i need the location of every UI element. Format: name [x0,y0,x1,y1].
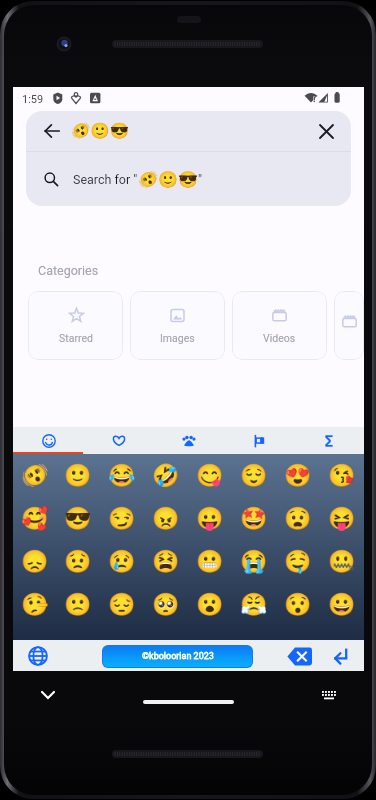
staticText: 😂 [108,463,136,489]
staticText: 🤐 [328,549,356,575]
button[interactable]: 🥰 [13,497,56,540]
staticText: 😘 [328,463,356,489]
button[interactable]: Back [41,120,63,142]
staticText: Search for " [73,172,138,187]
staticText: 1:59 [22,93,44,106]
button[interactable]: 😏 [100,497,144,540]
staticText: Categories [38,263,99,278]
staticText: Starred [59,332,93,344]
staticText: ©kboloorian 2023 [142,651,214,662]
button[interactable]: 😛 [188,497,232,540]
button[interactable]: Videos [232,291,327,360]
button[interactable]: 😫 [144,540,188,583]
button[interactable]: 😬 [188,540,232,583]
button[interactable]: Change language [26,644,50,668]
button[interactable]: 😯 [276,583,320,626]
button[interactable]: 😤 [232,583,276,626]
button[interactable]: 😝 [320,497,364,540]
button[interactable]: 😋 [188,454,232,497]
staticText: 😀 [328,592,356,618]
staticText: 😫 [152,549,180,575]
button[interactable]: 😠 [144,497,188,540]
button[interactable]: 🫨 [13,454,56,497]
staticText: 😟 [64,549,92,575]
button[interactable]: 😮 [188,583,232,626]
button[interactable]: 🙂 [56,454,100,497]
button[interactable]: 😂 [100,454,144,497]
button[interactable]: Category 1 [84,427,154,454]
staticText: 🫨🙂😎 [71,122,130,140]
button[interactable]: 😭 [232,540,276,583]
staticText: 😬 [196,549,224,575]
staticText: 🤩 [240,506,268,532]
staticText: 😢 [108,549,136,575]
staticText: 😤 [240,592,268,618]
button[interactable]: Images [130,291,225,360]
staticText: 😔 [108,592,136,618]
staticText: Images [160,332,195,344]
button[interactable]: 😞 [13,540,56,583]
staticText: 🙁 [64,592,92,618]
button[interactable]: Category 3 [224,427,294,454]
button[interactable]: Category 2 [154,427,224,454]
staticText: 😞 [21,549,49,575]
staticText: 😯 [284,592,312,618]
button[interactable]: Category 4 [294,427,364,454]
staticText: 😎 [64,506,92,532]
staticText: 😛 [196,506,224,532]
button[interactable]: Close [315,120,337,142]
staticText: 😠 [152,506,180,532]
staticText: 😭 [240,549,268,575]
button[interactable] [334,291,364,360]
staticText: 😏 [108,506,136,532]
button[interactable]: 🙁 [56,583,100,626]
button[interactable]: Search for " [26,152,351,206]
button[interactable]: 😔 [100,583,144,626]
staticText: 🤤 [284,549,312,575]
staticText: 😧 [284,506,312,532]
button[interactable]: 😘 [320,454,364,497]
button[interactable]: 😌 [232,454,276,497]
staticText: 🙂 [64,463,92,489]
staticText: 🤥 [21,592,49,618]
button[interactable]: 🤩 [232,497,276,540]
staticText: 😋 [196,463,224,489]
button[interactable]: 😍 [276,454,320,497]
button[interactable]: 🤤 [276,540,320,583]
button[interactable]: ©kboloorian 2023 [103,646,252,667]
staticText: 😮 [196,592,224,618]
button[interactable]: Starred [28,291,123,360]
button[interactable]: 😀 [320,583,364,626]
button[interactable]: 🤥 [13,583,56,626]
staticText: 🥰 [21,506,49,532]
button[interactable]: Hide keyboard [34,681,62,709]
staticText: " [198,172,203,187]
staticText: 🫨🙂😎 [138,170,198,189]
button[interactable]: 😎 [56,497,100,540]
button[interactable]: 🤐 [320,540,364,583]
staticText: Videos [263,332,296,344]
staticText: 😌 [240,463,268,489]
staticText: 🥺 [152,592,180,618]
button[interactable]: 🥺 [144,583,188,626]
button[interactable]: Backspace [287,647,312,666]
staticText: 😝 [328,506,356,532]
button[interactable]: 😟 [56,540,100,583]
staticText: 😍 [284,463,312,489]
button[interactable]: Enter [327,642,355,670]
button[interactable]: 🤣 [144,454,188,497]
button[interactable]: Switch keyboard [315,681,343,709]
button[interactable]: 😢 [100,540,144,583]
button[interactable]: 😧 [276,497,320,540]
button[interactable]: Category 0 [13,427,84,454]
staticText: 🤣 [152,463,180,489]
staticText: 🫨 [21,463,49,489]
